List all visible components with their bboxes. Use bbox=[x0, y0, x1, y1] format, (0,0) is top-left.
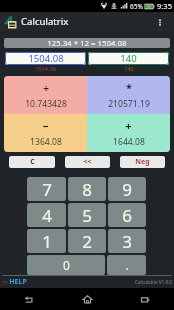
button[interactable]: 8 bbox=[68, 177, 106, 201]
staticText: 140 bbox=[124, 65, 134, 72]
staticText: 1364.08 bbox=[30, 136, 62, 148]
staticText: Calculatrix bbox=[21, 15, 69, 28]
button[interactable]: 4 bbox=[27, 203, 66, 227]
button[interactable]: 9 bbox=[108, 177, 146, 201]
staticText: 3 bbox=[122, 230, 132, 253]
button[interactable]: More options bbox=[146, 12, 174, 31]
staticText: * bbox=[126, 80, 132, 95]
staticText: ÷ bbox=[43, 81, 49, 95]
button[interactable]: ÷ bbox=[4, 76, 87, 114]
button[interactable]: C bbox=[9, 156, 55, 168]
staticText: 0 bbox=[63, 257, 70, 273]
button[interactable]: Recents bbox=[116, 288, 174, 310]
staticText: 1 bbox=[42, 230, 52, 253]
staticText: 1644.08 bbox=[113, 136, 145, 148]
staticText: 7 bbox=[42, 178, 52, 201]
staticText: 65% bbox=[130, 2, 143, 11]
button[interactable]: ?? bbox=[2, 277, 27, 287]
staticText: 140 bbox=[120, 52, 137, 65]
staticText: HELP bbox=[9, 277, 27, 287]
button[interactable]: 0 bbox=[27, 255, 105, 275]
button[interactable]: + bbox=[87, 114, 170, 152]
staticText: 5 bbox=[82, 204, 92, 227]
staticText: 10.743428 bbox=[25, 98, 67, 110]
button[interactable]: * bbox=[87, 76, 170, 114]
button[interactable]: 1 bbox=[27, 229, 66, 253]
staticText: 1504.08 bbox=[28, 52, 64, 65]
staticText: 125.34 * 12 = 1504.08 bbox=[47, 38, 127, 48]
staticText: ?? bbox=[2, 279, 8, 286]
staticText: 1504.08 bbox=[35, 65, 56, 72]
staticText: 9:35 bbox=[157, 1, 172, 11]
staticText: 6 bbox=[122, 204, 132, 227]
staticText: Neg bbox=[135, 157, 150, 167]
staticText: C bbox=[30, 157, 35, 167]
staticText: − bbox=[43, 119, 49, 133]
button[interactable]: − bbox=[4, 114, 87, 152]
button[interactable]: 140 bbox=[88, 52, 169, 65]
staticText: . bbox=[125, 257, 129, 273]
button[interactable]: 7 bbox=[27, 177, 66, 201]
staticText: 210571.19 bbox=[108, 98, 150, 110]
button[interactable]: 6 bbox=[108, 203, 146, 227]
button[interactable]: 5 bbox=[68, 203, 106, 227]
staticText: << bbox=[83, 157, 92, 167]
staticText: 9 bbox=[122, 178, 132, 201]
staticText: 4 bbox=[42, 204, 52, 227]
button[interactable]: Home bbox=[58, 288, 116, 310]
button[interactable]: << bbox=[65, 156, 110, 168]
button[interactable]: Neg bbox=[120, 156, 165, 168]
button[interactable]: . bbox=[107, 255, 146, 275]
button[interactable]: 3 bbox=[108, 229, 146, 253]
staticText: 8 bbox=[82, 178, 92, 201]
button[interactable]: 1504.08 bbox=[5, 52, 86, 65]
button[interactable]: Back bbox=[0, 288, 58, 310]
staticText: + bbox=[125, 118, 132, 133]
staticText: 2 bbox=[82, 230, 92, 253]
staticText: Calculatrix V1.0.0 bbox=[135, 279, 172, 285]
button[interactable]: 2 bbox=[68, 229, 106, 253]
